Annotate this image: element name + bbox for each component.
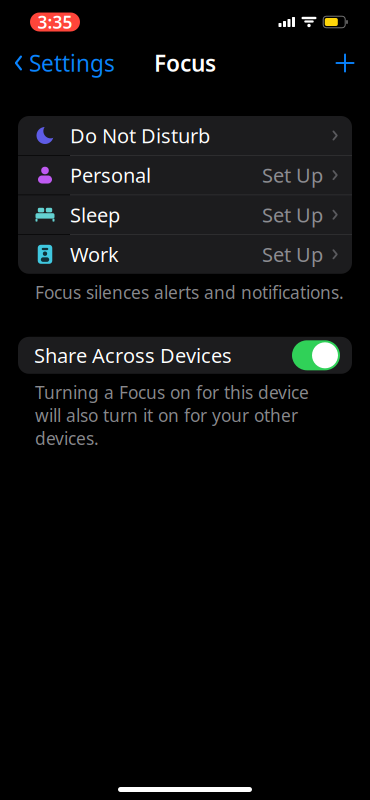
staticText: Turning a Focus on for this device will … xyxy=(35,381,309,450)
button[interactable]: Settings xyxy=(0,40,123,86)
staticText: Set Up xyxy=(262,201,323,228)
staticText: Sleep xyxy=(70,201,120,228)
staticText: Share Across Devices xyxy=(34,342,232,369)
staticText: 3:35 xyxy=(37,10,72,33)
staticText: Focus silences alerts and notifications. xyxy=(35,281,344,304)
staticText: Set Up xyxy=(262,241,323,268)
button[interactable]: Sleep xyxy=(18,195,352,234)
staticText: Settings xyxy=(29,48,115,78)
button[interactable]: Personal xyxy=(18,156,352,195)
staticText: Focus xyxy=(154,48,216,78)
button[interactable]: Do Not Disturb xyxy=(18,116,352,155)
button[interactable]: Work xyxy=(18,235,352,274)
staticText: Set Up xyxy=(262,162,323,188)
button[interactable]: Add Focus xyxy=(320,44,370,82)
staticText: Do Not Disturb xyxy=(70,122,210,149)
staticText: Personal xyxy=(70,162,151,188)
button[interactable]: Share Across Devices xyxy=(18,337,352,374)
staticText: Work xyxy=(70,241,119,268)
